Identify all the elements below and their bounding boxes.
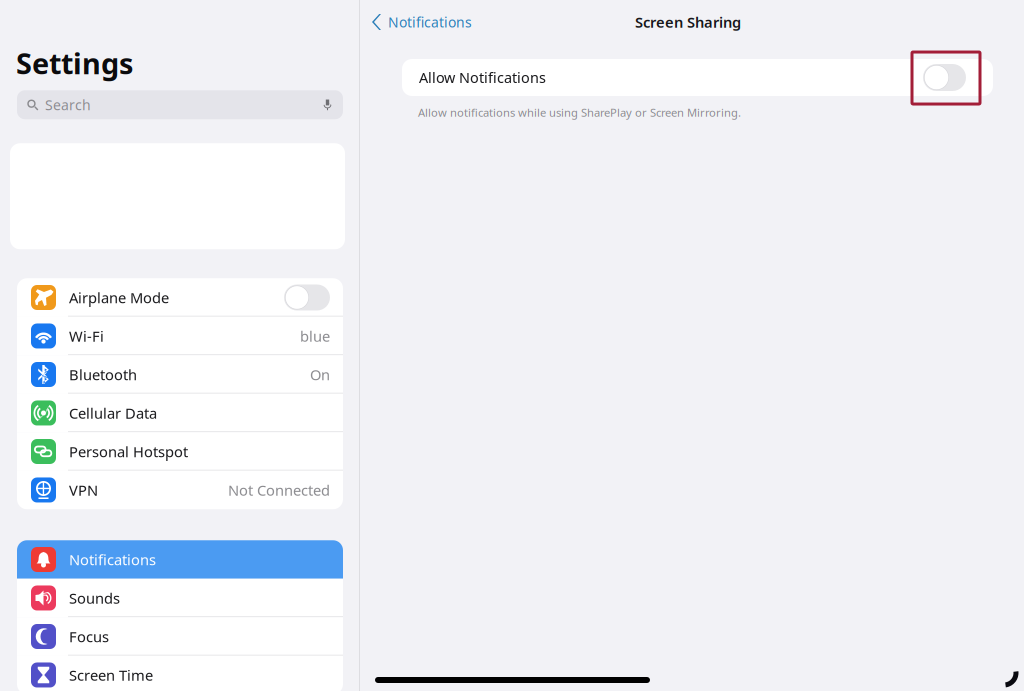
staticText: Sounds xyxy=(69,588,120,608)
button[interactable]: Allow Notifications xyxy=(402,59,993,96)
button[interactable]: Search xyxy=(17,90,343,119)
staticText: VPN xyxy=(69,480,98,500)
staticText: Personal Hotspot xyxy=(69,442,188,461)
staticText: On xyxy=(310,365,330,384)
staticText: Notifications xyxy=(69,550,156,569)
staticText: Focus xyxy=(69,627,109,646)
staticText: Screen Sharing xyxy=(635,12,741,32)
button[interactable]: Wi-Fi xyxy=(17,317,343,355)
staticText: Search xyxy=(45,95,91,114)
staticText: Allow Notifications xyxy=(419,68,546,87)
button[interactable]: VPN xyxy=(17,471,343,509)
staticText: blue xyxy=(300,326,330,346)
staticText: Cellular Data xyxy=(69,403,157,423)
button[interactable]: Airplane Mode xyxy=(17,278,343,317)
staticText: Screen Time xyxy=(69,665,153,685)
staticText: Settings xyxy=(16,44,133,82)
button[interactable]: Screen Time xyxy=(17,656,343,691)
staticText: Not Connected xyxy=(228,480,330,500)
staticText: Notifications xyxy=(388,13,472,31)
staticText: Bluetooth xyxy=(69,365,137,384)
button[interactable]: Notifications xyxy=(360,2,482,42)
button[interactable]: Focus xyxy=(17,617,343,656)
staticText: Allow notifications while using SharePla… xyxy=(418,105,741,120)
button[interactable]: Notifications xyxy=(17,540,343,579)
staticText: Airplane Mode xyxy=(69,288,169,307)
button[interactable]: Bluetooth xyxy=(17,355,343,394)
button[interactable]: Sounds xyxy=(17,579,343,617)
button[interactable]: Cellular Data xyxy=(17,394,343,432)
staticText: Wi-Fi xyxy=(69,326,104,346)
button[interactable]: Personal Hotspot xyxy=(17,432,343,471)
